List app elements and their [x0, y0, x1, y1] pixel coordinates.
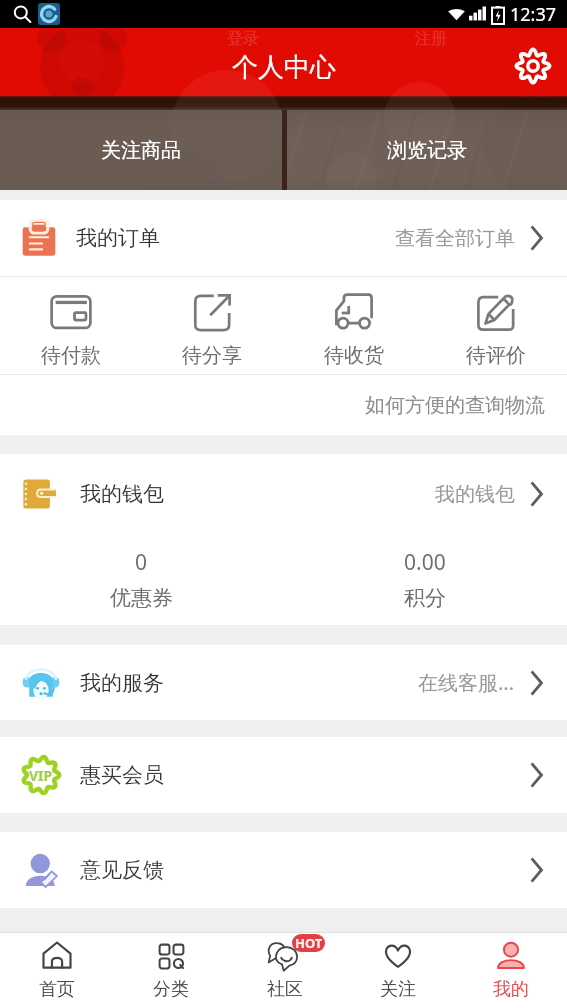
staticText: 关注商品: [101, 138, 181, 163]
staticText: 浏览记录: [387, 138, 467, 163]
staticText: 社区: [267, 978, 303, 1001]
staticText: 个人中心: [232, 51, 336, 84]
button[interactable]: 如何方便的查询物流: [0, 375, 567, 435]
staticText: 0: [135, 548, 148, 577]
button[interactable]: 待付款: [0, 277, 141, 374]
staticText: 首页: [39, 978, 75, 1001]
staticText: 注册: [415, 29, 447, 49]
staticText: 12:37: [510, 2, 557, 27]
staticText: 0.00: [404, 548, 446, 577]
staticText: 查看全部订单: [395, 226, 515, 251]
staticText: 待分享: [182, 343, 242, 368]
button[interactable]: VIP: [0, 737, 567, 813]
staticText: VIP: [29, 766, 53, 785]
button[interactable]: 我的钱包: [0, 454, 567, 534]
button[interactable]: 浏览记录: [287, 110, 567, 190]
button[interactable]: 我的: [454, 933, 567, 1008]
button[interactable]: 待分享: [141, 277, 283, 374]
button[interactable]: 我的服务: [0, 645, 567, 720]
button[interactable]: 待评价: [425, 277, 567, 374]
button[interactable]: Settings: [511, 44, 555, 88]
button[interactable]: 我的订单: [0, 200, 567, 276]
button[interactable]: HOT: [228, 933, 341, 1008]
button[interactable]: 关注: [341, 933, 454, 1008]
staticText: 待评价: [466, 343, 526, 368]
button[interactable]: 待收货: [283, 277, 425, 374]
staticText: 积分: [404, 585, 446, 611]
staticText: 我的订单: [76, 225, 160, 251]
staticText: 我的服务: [80, 670, 164, 696]
button[interactable]: 0.00: [283, 534, 567, 625]
staticText: 如何方便的查询物流: [365, 393, 545, 418]
button[interactable]: 0: [0, 534, 283, 625]
staticText: 分类: [153, 978, 189, 1001]
staticText: 惠买会员: [80, 762, 164, 788]
staticText: 意见反馈: [80, 857, 164, 883]
button[interactable]: 分类: [114, 933, 228, 1008]
staticText: 登录: [227, 29, 259, 49]
button[interactable]: 意见反馈: [0, 832, 567, 908]
button[interactable]: 关注商品: [0, 110, 282, 190]
staticText: 待付款: [41, 343, 101, 368]
button[interactable]: 首页: [0, 933, 114, 1008]
staticText: 优惠券: [110, 585, 173, 611]
staticText: 待收货: [324, 343, 384, 368]
staticText: 我的钱包: [435, 482, 515, 507]
staticText: 在线客服...: [418, 669, 515, 696]
staticText: HOT: [295, 934, 323, 952]
staticText: 我的: [493, 978, 529, 1001]
staticText: 我的钱包: [80, 481, 164, 507]
staticText: 关注: [380, 978, 416, 1001]
